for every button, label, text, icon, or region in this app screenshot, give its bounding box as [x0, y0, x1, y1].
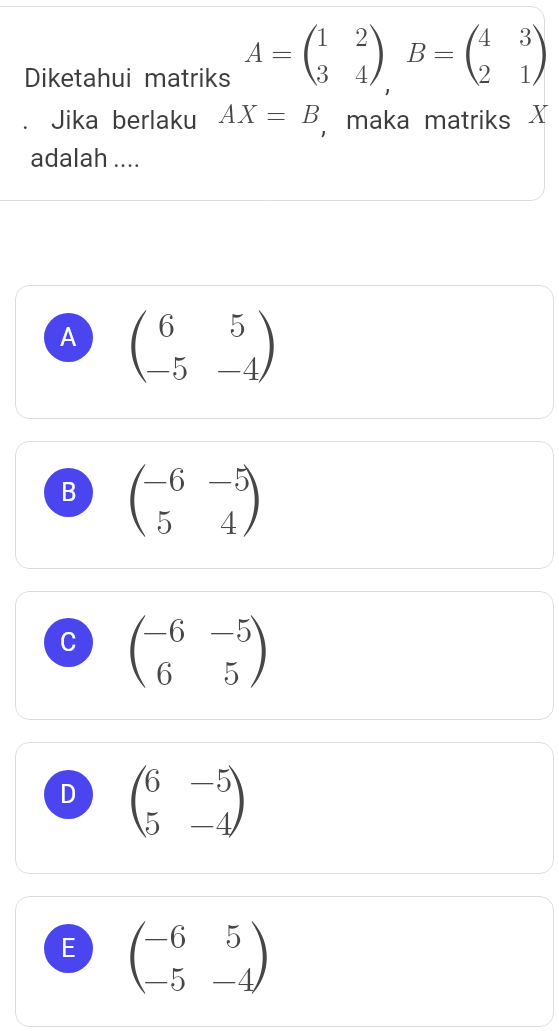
- staticText: B: [405, 30, 425, 70]
- button[interactable]: D: [15, 742, 554, 874]
- button[interactable]: A: [15, 285, 554, 419]
- staticText: 5: [223, 647, 240, 695]
- staticText: =: [266, 94, 287, 131]
- staticText: 1: [519, 54, 533, 91]
- staticText: berlaku: [112, 105, 198, 135]
- staticText: 4: [355, 54, 369, 91]
- staticText: A: [60, 323, 77, 352]
- staticText: B: [61, 478, 77, 507]
- staticText: E: [61, 934, 76, 963]
- staticText: X: [236, 94, 256, 131]
- staticText: 3: [519, 17, 533, 54]
- staticText: =: [433, 30, 455, 70]
- staticText: 1: [316, 17, 330, 54]
- staticText: A: [243, 30, 264, 70]
- staticText: −5: [207, 453, 251, 501]
- staticText: −5: [209, 604, 253, 652]
- staticText: 5: [225, 910, 242, 958]
- staticText: 5: [229, 299, 246, 347]
- staticText: X: [527, 94, 547, 131]
- staticText: −6: [142, 453, 186, 501]
- staticText: C: [60, 628, 77, 657]
- staticText: ,: [321, 110, 327, 140]
- staticText: −5: [143, 953, 187, 1001]
- staticText: matriks: [424, 105, 512, 135]
- staticText: 5: [144, 797, 161, 845]
- staticText: Diketahui: [24, 63, 132, 93]
- button[interactable]: E: [15, 896, 554, 1027]
- staticText: maka: [346, 105, 411, 135]
- button[interactable]: C: [15, 591, 554, 720]
- staticText: −6: [142, 604, 186, 652]
- staticText: matriks: [144, 63, 232, 93]
- staticText: A: [217, 94, 237, 131]
- staticText: 6: [156, 647, 173, 695]
- staticText: ....: [113, 143, 141, 173]
- staticText: adalah: [30, 143, 108, 173]
- staticText: ,: [385, 68, 391, 98]
- staticText: −4: [189, 797, 233, 845]
- staticText: −4: [211, 953, 255, 1001]
- staticText: .: [22, 105, 29, 135]
- staticText: −4: [216, 342, 260, 390]
- staticText: 3: [316, 54, 330, 91]
- staticText: 4: [220, 496, 237, 544]
- staticText: 2: [355, 17, 369, 54]
- staticText: D: [60, 780, 77, 809]
- staticText: −5: [189, 754, 233, 802]
- button[interactable]: B: [15, 441, 554, 569]
- staticText: =: [271, 30, 293, 70]
- staticText: B: [300, 94, 319, 131]
- staticText: 5: [156, 496, 173, 544]
- staticText: −5: [145, 342, 189, 390]
- staticText: 2: [478, 54, 492, 91]
- staticText: 6: [158, 299, 175, 347]
- staticText: Jika: [51, 105, 99, 135]
- staticText: −6: [143, 910, 187, 958]
- staticText: 6: [144, 754, 161, 802]
- staticText: 4: [478, 17, 492, 54]
